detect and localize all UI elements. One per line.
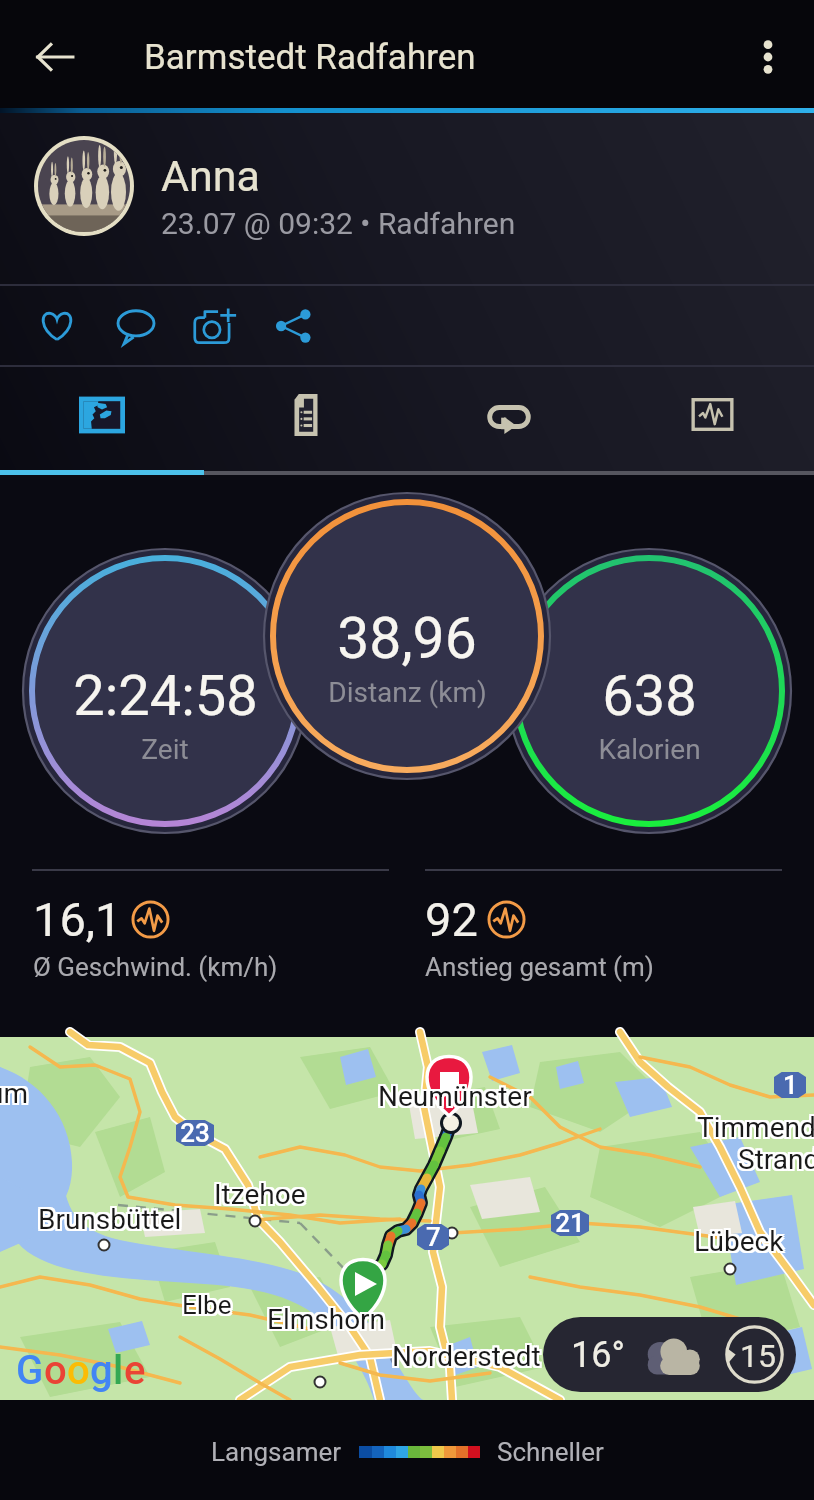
staticText: Elbe	[182, 1290, 232, 1320]
staticText: Itzehoe	[214, 1180, 306, 1213]
staticText: Itzehoe	[212, 1176, 304, 1209]
staticText: 21	[555, 1208, 585, 1238]
staticText: Brunsbüttel	[36, 1201, 180, 1234]
staticText: 15	[740, 1337, 776, 1375]
button[interactable]: Back	[22, 24, 88, 90]
staticText: Norderstedt	[390, 1338, 539, 1371]
staticText: Strand	[738, 1143, 814, 1176]
button[interactable]: Weather	[543, 1317, 796, 1392]
staticText: Lübeck	[692, 1223, 782, 1256]
staticText: Norderstedt	[394, 1340, 543, 1373]
staticText: Itzehoe	[216, 1180, 308, 1213]
staticText: g	[90, 1347, 113, 1394]
staticText: G	[16, 1347, 44, 1394]
staticText: Timmendo	[697, 1111, 814, 1144]
staticText: o	[44, 1347, 67, 1394]
button[interactable]: Like	[17, 286, 96, 366]
staticText: Itzehoe	[212, 1178, 304, 1211]
staticText: Lübeck	[696, 1225, 786, 1258]
staticText: um	[0, 1079, 30, 1112]
staticText: Brunsbüttel	[40, 1201, 184, 1234]
staticText: Anna	[161, 151, 260, 201]
staticText: Neumünster	[376, 1080, 530, 1113]
staticText: 16°	[571, 1334, 625, 1376]
staticText: 1	[783, 1070, 798, 1100]
staticText: Norderstedt	[392, 1340, 541, 1373]
button[interactable]: Share	[254, 286, 333, 366]
staticText: um	[0, 1079, 28, 1112]
staticText: Neumünster	[378, 1080, 532, 1113]
staticText: Lübeck	[696, 1223, 786, 1256]
staticText: Elbe	[182, 1292, 232, 1322]
staticText: Neumünster	[376, 1078, 530, 1111]
button[interactable]: Details	[204, 367, 407, 471]
staticText: Elmshorn	[267, 1303, 386, 1336]
staticText: Neumünster	[380, 1080, 534, 1113]
staticText: Norderstedt	[390, 1340, 539, 1373]
staticText: um	[0, 1079, 26, 1112]
staticText: Timmendo	[695, 1109, 814, 1142]
staticText: Itzehoe	[214, 1176, 306, 1209]
staticText: Norderstedt	[394, 1342, 543, 1375]
staticText: Strand	[738, 1145, 814, 1178]
staticText: um	[0, 1077, 28, 1110]
staticText: Lübeck	[696, 1227, 786, 1260]
staticText: Strand	[736, 1143, 814, 1176]
staticText: Norderstedt	[394, 1338, 543, 1371]
staticText: um	[0, 1075, 28, 1108]
staticText: Elbe	[180, 1288, 230, 1318]
button[interactable]: Add photo	[175, 286, 254, 366]
staticText: Schneller	[497, 1437, 604, 1467]
staticText: Brunsbüttel	[38, 1205, 182, 1238]
staticText: 2:24:58	[73, 663, 258, 729]
staticText: Brunsbüttel	[36, 1203, 180, 1236]
staticText: 16,1	[33, 892, 122, 947]
staticText: Timmendo	[695, 1111, 814, 1144]
staticText: Elbe	[180, 1290, 230, 1320]
staticText: Neumünster	[380, 1082, 534, 1115]
staticText: Elbe	[184, 1290, 234, 1320]
staticText: um	[0, 1075, 26, 1108]
staticText: 7	[426, 1222, 441, 1252]
staticText: 23.07 @ 09:32 • Radfahren	[161, 206, 516, 241]
button[interactable]: More options	[738, 27, 798, 87]
staticText: Elmshorn	[269, 1305, 388, 1338]
staticText: Strand	[738, 1141, 814, 1174]
staticText: Brunsbüttel	[40, 1203, 184, 1236]
staticText: o	[67, 1347, 90, 1394]
staticText: Lübeck	[694, 1223, 784, 1256]
staticText: Strand	[736, 1141, 814, 1174]
staticText: Brunsbüttel	[38, 1203, 182, 1236]
staticText: Strand	[736, 1145, 814, 1178]
staticText: Zeit	[141, 733, 189, 766]
staticText: Kalorien	[598, 733, 701, 766]
staticText: Timmendo	[695, 1113, 814, 1146]
staticText: Norderstedt	[392, 1338, 541, 1371]
staticText: Langsamer	[211, 1437, 342, 1467]
staticText: Neumünster	[378, 1082, 532, 1115]
staticText: Elmshorn	[265, 1305, 384, 1338]
button[interactable]: Graphs	[611, 367, 814, 471]
staticText: Barmstedt Radfahren	[144, 37, 476, 78]
staticText: um	[0, 1077, 30, 1110]
button[interactable]: Laps	[407, 367, 610, 471]
staticText: Elmshorn	[267, 1305, 386, 1338]
staticText: um	[0, 1077, 26, 1110]
staticText: Anstieg gesamt (m)	[425, 952, 654, 982]
button[interactable]: Comment	[96, 286, 175, 366]
staticText: Elmshorn	[265, 1301, 384, 1334]
staticText: 638	[602, 663, 697, 729]
staticText: Timmendo	[697, 1113, 814, 1146]
staticText: Timmendo	[699, 1111, 814, 1144]
staticText: Neumünster	[376, 1082, 530, 1115]
staticText: Elmshorn	[269, 1303, 388, 1336]
staticText: Itzehoe	[212, 1180, 304, 1213]
staticText: Itzehoe	[216, 1176, 308, 1209]
staticText: 92	[425, 892, 478, 947]
button[interactable]: Map	[0, 367, 203, 471]
staticText: Elbe	[182, 1288, 232, 1318]
staticText: Strand	[740, 1143, 814, 1176]
staticText: Strand	[740, 1145, 814, 1178]
staticText: Brunsbüttel	[40, 1205, 184, 1238]
staticText: 38,96	[337, 605, 477, 672]
